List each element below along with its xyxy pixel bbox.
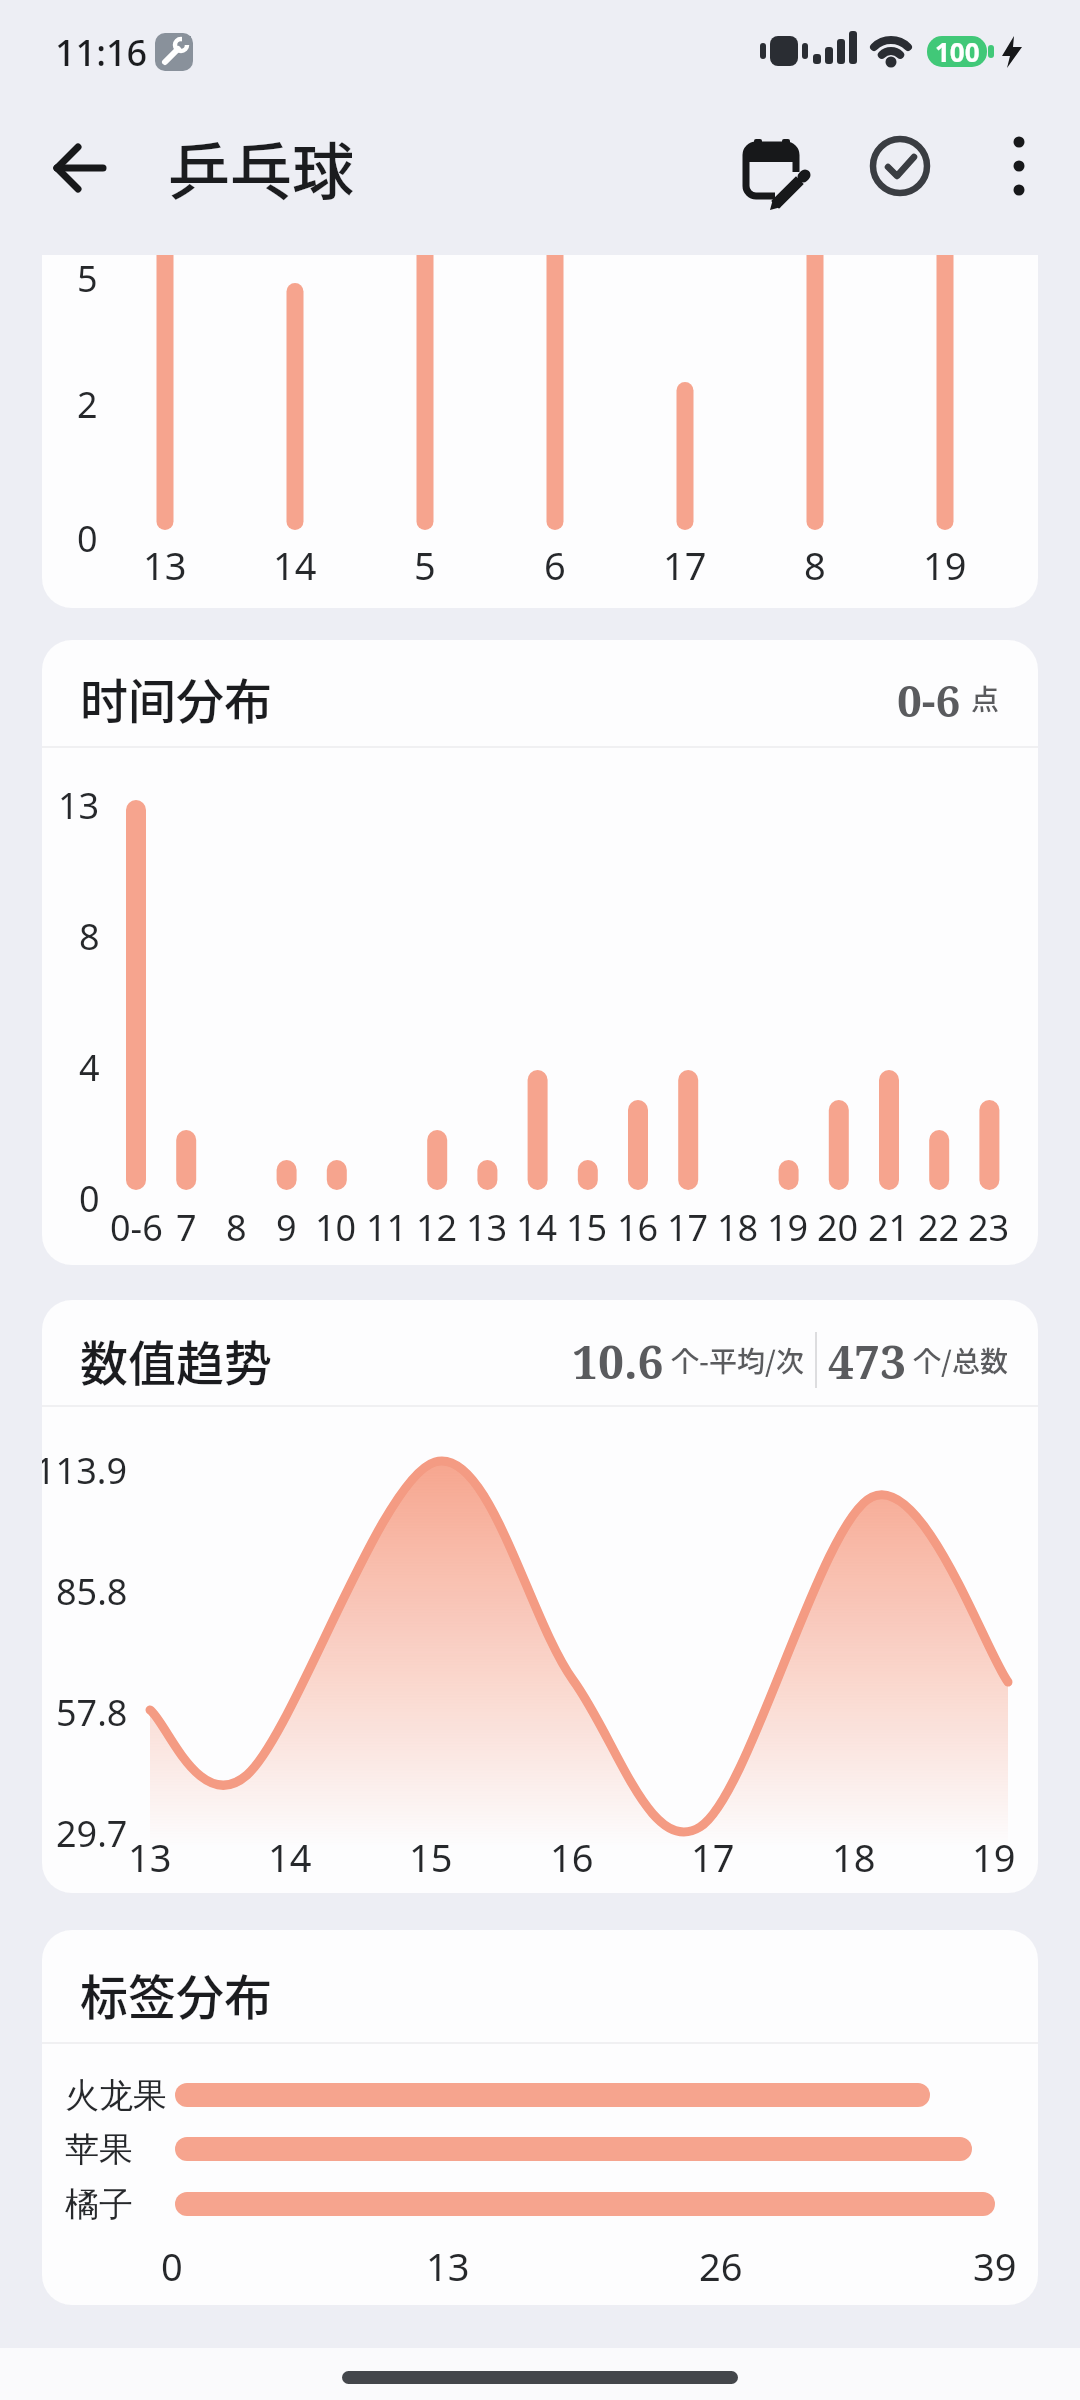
- staticText: 15: [566, 1203, 608, 1252]
- staticText: 0: [79, 1174, 100, 1223]
- staticText: 0-6: [897, 670, 961, 726]
- staticText: 18: [717, 1203, 759, 1252]
- staticText: 11: [366, 1203, 408, 1252]
- staticText: 16: [550, 1831, 594, 1883]
- staticText: 21: [868, 1203, 910, 1252]
- staticText: 57.8: [56, 1688, 128, 1737]
- staticText: 11:16: [55, 28, 148, 77]
- staticText: 0: [77, 514, 98, 563]
- staticText: 7: [176, 1203, 197, 1252]
- staticText: 13: [426, 2240, 470, 2292]
- staticText: 8: [804, 539, 826, 591]
- staticText: 23: [968, 1203, 1010, 1252]
- staticText: 2: [77, 380, 98, 429]
- staticText: 13: [58, 781, 100, 830]
- staticText: 13: [466, 1203, 508, 1252]
- staticText: 8: [79, 912, 100, 961]
- staticText: 5: [77, 255, 98, 303]
- staticText: 18: [832, 1831, 876, 1883]
- staticText: 标签分布: [80, 1959, 273, 2029]
- staticText: 14: [516, 1203, 558, 1252]
- staticText: 9: [276, 1203, 297, 1252]
- staticText: 39: [973, 2240, 1017, 2292]
- staticText: 12: [416, 1203, 458, 1252]
- button[interactable]: [40, 130, 120, 206]
- staticText: 13: [143, 539, 187, 591]
- staticText: 100: [935, 34, 980, 69]
- staticText: 17: [691, 1831, 735, 1883]
- staticText: 17: [667, 1203, 709, 1252]
- staticText: 时间分布: [80, 663, 273, 733]
- button[interactable]: [862, 128, 938, 204]
- staticText: 5: [414, 539, 436, 591]
- staticText: 29.7: [56, 1809, 128, 1858]
- staticText: 10: [315, 1203, 357, 1252]
- staticText: 15: [409, 1831, 453, 1883]
- staticText: 22: [918, 1203, 960, 1252]
- staticText: 14: [268, 1831, 312, 1883]
- staticText: 数值趋势: [80, 1325, 273, 1395]
- staticText: 苹果: [65, 2128, 133, 2171]
- staticText: 乒乓球: [168, 123, 355, 213]
- staticText: 8: [226, 1203, 247, 1252]
- staticText: 0: [161, 2240, 183, 2292]
- staticText: 个/总数: [913, 1340, 1008, 1381]
- staticText: 点: [971, 678, 1000, 719]
- button[interactable]: [734, 128, 814, 208]
- staticText: 19: [767, 1203, 809, 1252]
- staticText: 16: [617, 1203, 659, 1252]
- staticText: 13: [128, 1831, 172, 1883]
- staticText: 6: [544, 539, 566, 591]
- staticText: 0-6: [110, 1203, 163, 1252]
- staticText: 85.8: [56, 1567, 128, 1616]
- staticText: 4: [79, 1043, 100, 1092]
- button[interactable]: 0-6: [702, 670, 1000, 726]
- staticText: 火龙果: [65, 2074, 167, 2117]
- staticText: 19: [923, 539, 967, 591]
- staticText: 橘子: [65, 2183, 133, 2226]
- button[interactable]: [989, 133, 1049, 199]
- staticText: 19: [972, 1831, 1016, 1883]
- staticText: 20: [817, 1203, 859, 1252]
- staticText: 个-平均/次: [671, 1340, 804, 1381]
- staticText: 17: [663, 539, 707, 591]
- staticText: 473: [828, 1330, 906, 1390]
- staticText: 10.6: [572, 1330, 664, 1390]
- staticText: 113.9: [42, 1446, 128, 1495]
- staticText: 14: [273, 539, 317, 591]
- staticText: 26: [699, 2240, 743, 2292]
